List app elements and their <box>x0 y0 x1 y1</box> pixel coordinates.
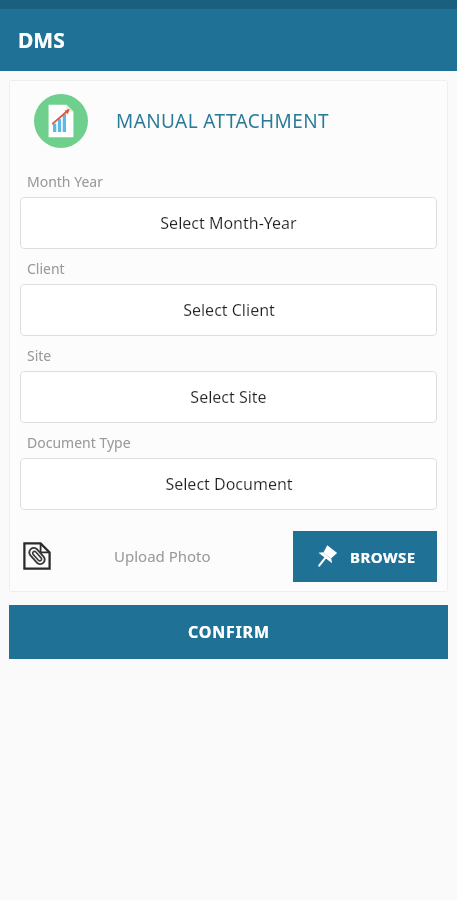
staticText: Upload Photo <box>114 546 211 566</box>
button[interactable]: BROWSE <box>293 531 437 582</box>
staticText: BROWSE <box>350 547 416 567</box>
staticText: Select Document <box>165 473 293 495</box>
button[interactable]: Attach file <box>20 539 54 573</box>
staticText: Select Client <box>183 299 275 321</box>
staticText: Month Year <box>27 172 103 191</box>
staticText: Document Type <box>27 433 131 452</box>
button[interactable]: CONFIRM <box>9 605 448 659</box>
button[interactable]: Select Document <box>20 458 437 510</box>
staticText: Site <box>27 346 52 365</box>
staticText: DMS <box>18 26 65 55</box>
staticText: Select Month-Year <box>160 212 297 234</box>
button[interactable]: Select Month-Year <box>20 197 437 249</box>
button[interactable]: Select Site <box>20 371 437 423</box>
button[interactable]: Select Client <box>20 284 437 336</box>
staticText: Client <box>27 259 65 278</box>
staticText: MANUAL ATTACHMENT <box>116 108 329 134</box>
staticText: Select Site <box>190 386 267 408</box>
staticText: CONFIRM <box>188 621 270 643</box>
